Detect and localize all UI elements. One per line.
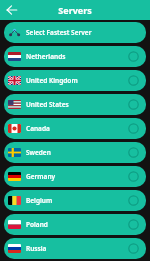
staticText: Sweden	[26, 148, 51, 157]
button[interactable]: Germany	[4, 166, 146, 187]
button[interactable]: Select Fastest Server	[4, 22, 146, 43]
staticText: Germany	[26, 172, 56, 181]
button[interactable]: Belgium	[4, 190, 146, 211]
button[interactable]: Poland	[4, 214, 146, 235]
staticText: Russia	[26, 244, 47, 253]
staticText: Belgium	[26, 196, 53, 205]
staticText: United States	[26, 100, 69, 109]
staticText: Select Fastest Server	[26, 28, 92, 37]
button[interactable]: United Kingdom	[4, 70, 146, 91]
staticText: Canada	[26, 124, 50, 133]
staticText: Poland	[26, 220, 48, 229]
button[interactable]: Sweden	[4, 142, 146, 163]
staticText: United Kingdom	[26, 76, 78, 85]
button[interactable]: Canada	[4, 118, 146, 139]
button[interactable]: United States	[4, 94, 146, 115]
button[interactable]: Russia	[4, 238, 146, 259]
button[interactable]: Back	[4, 2, 20, 18]
staticText: Servers	[58, 4, 92, 16]
staticText: Netherlands	[26, 52, 66, 61]
button[interactable]: Netherlands	[4, 46, 146, 67]
